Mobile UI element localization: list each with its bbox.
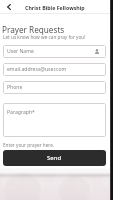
- button[interactable]: Back: [0, 0, 17, 14]
- staticText: email.address@user.com: [7, 66, 67, 73]
- staticText: Phone: [7, 84, 23, 91]
- button[interactable]: User Name: [3, 45, 106, 58]
- staticText: User Name: [7, 48, 34, 55]
- button[interactable]: Paragraph*: [3, 103, 106, 137]
- other: Choose contact: [95, 49, 99, 54]
- staticText: Let us know how we can pray for you!: [3, 34, 86, 40]
- staticText: Prayer Requests: [2, 24, 65, 35]
- staticText: Christ Bible Fellowship: [25, 4, 85, 11]
- button[interactable]: Phone: [3, 81, 106, 94]
- staticText: Send: [47, 154, 62, 162]
- button[interactable]: email.address@user.com: [3, 63, 106, 76]
- button[interactable]: Send: [3, 150, 106, 166]
- staticText: Paragraph*: [7, 109, 35, 116]
- staticText: Enter your prayer here.: [3, 142, 55, 148]
